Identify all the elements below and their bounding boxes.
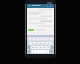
button[interactable]: Conversation title bar: [27, 4, 54, 8]
